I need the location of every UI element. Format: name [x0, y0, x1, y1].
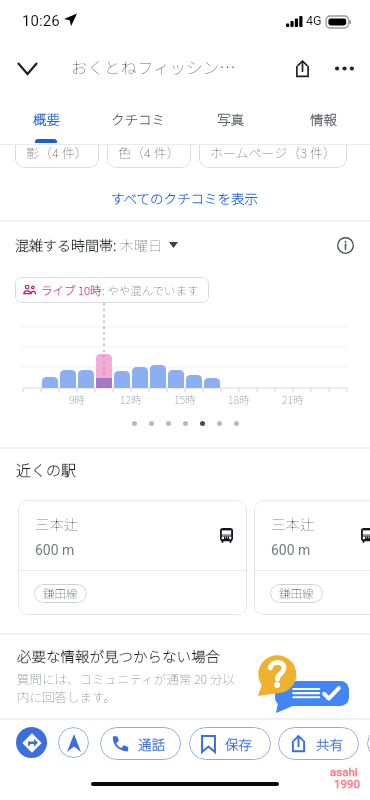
- button[interactable]: クチコミ: [92, 100, 184, 145]
- staticText: おくとねフィッシン…: [71, 55, 236, 79]
- button[interactable]: すべてのクチコミを表示: [97, 182, 273, 212]
- staticText: 三本辻: [271, 513, 315, 534]
- button[interactable]: More options: [324, 48, 364, 88]
- staticText: 12時: [120, 392, 142, 407]
- staticText: 必要な情報が見つからない場合: [17, 645, 220, 666]
- button[interactable]: Directions: [16, 727, 47, 758]
- staticText: 1990: [334, 777, 360, 790]
- staticText: : やや混んでいます: [102, 282, 199, 299]
- staticText: すべてのクチコミを表示: [111, 188, 259, 206]
- button[interactable]: 通話: [100, 727, 181, 760]
- button[interactable]: 三本辻: [18, 500, 247, 615]
- staticText: 鎌田線: [43, 585, 78, 602]
- staticText: 質問には、コミュニティが通常 20 分以内に回答します。: [17, 669, 245, 706]
- staticText: 600 m: [271, 542, 311, 558]
- staticText: 4G: [306, 13, 322, 28]
- button[interactable]: 写真: [184, 100, 277, 145]
- staticText: 三本辻: [35, 513, 79, 534]
- button[interactable]: Collapse: [5, 46, 49, 90]
- button[interactable]: 色（4 件）: [107, 136, 191, 168]
- staticText: 9時: [69, 392, 85, 407]
- staticText: 情報: [310, 109, 337, 129]
- staticText: 10:26: [22, 12, 60, 30]
- staticText: 15時: [174, 392, 196, 407]
- staticText: 18時: [228, 392, 250, 407]
- staticText: 保存: [225, 734, 252, 754]
- staticText: 影（4 件）: [26, 143, 88, 162]
- staticText: 21時: [282, 392, 304, 407]
- button[interactable]: 情報: [277, 100, 370, 145]
- staticText: 近くの駅: [16, 459, 77, 481]
- button[interactable]: 混雑する時間帯:: [15, 232, 178, 258]
- button[interactable]: 三本辻: [254, 500, 370, 615]
- button[interactable]: ホームページ（3 件）: [199, 136, 347, 168]
- staticText: 色（4 件）: [118, 143, 180, 162]
- staticText: 共有: [316, 734, 343, 754]
- button[interactable]: 概要: [0, 100, 92, 145]
- button[interactable]: 影（4 件）: [15, 136, 99, 168]
- button[interactable]: [367, 727, 370, 760]
- staticText: 写真: [217, 109, 244, 129]
- staticText: 鎌田線: [279, 585, 314, 602]
- button[interactable]: 鎌田線: [34, 584, 87, 603]
- staticText: 木曜日: [120, 235, 162, 255]
- button[interactable]: 保存: [189, 727, 271, 760]
- button[interactable]: ライブ 10時: [15, 277, 209, 303]
- button[interactable]: Navigate: [58, 727, 89, 758]
- staticText: 混雑する時間帯:: [15, 235, 120, 255]
- button[interactable]: 鎌田線: [270, 584, 323, 603]
- staticText: クチコミ: [111, 109, 165, 129]
- staticText: 概要: [33, 109, 60, 129]
- staticText: ホームページ（3 件）: [210, 143, 336, 162]
- button[interactable]: Information: [332, 232, 358, 258]
- button[interactable]: 共有: [278, 727, 359, 760]
- button[interactable]: Share: [282, 48, 322, 88]
- staticText: 600 m: [35, 542, 75, 558]
- staticText: 通話: [138, 734, 165, 754]
- staticText: asahi: [330, 765, 358, 778]
- staticText: ライブ 10時: [41, 282, 102, 299]
